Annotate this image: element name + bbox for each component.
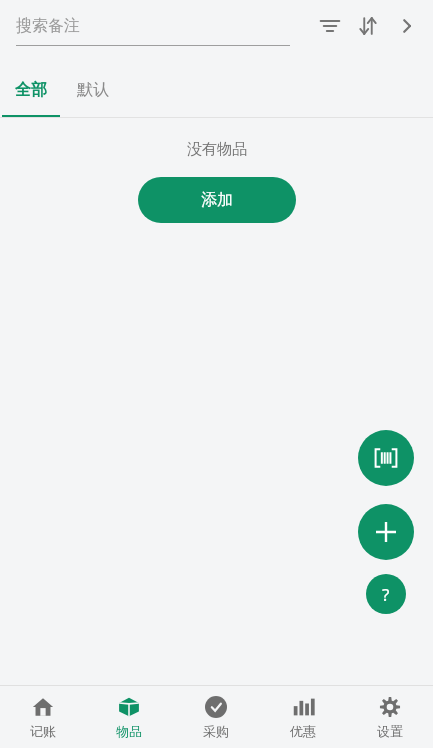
- staticText: 没有物品: [187, 140, 247, 159]
- button[interactable]: 全部: [0, 62, 62, 118]
- staticText: 默认: [77, 80, 109, 100]
- button[interactable]: Sort: [349, 7, 387, 45]
- button[interactable]: 采购: [172, 686, 259, 748]
- button[interactable]: Add: [358, 504, 414, 560]
- button[interactable]: 默认: [62, 62, 124, 118]
- button[interactable]: 添加: [138, 177, 296, 223]
- staticText: 记账: [30, 723, 56, 739]
- button[interactable]: More: [387, 7, 425, 45]
- staticText: 优惠: [290, 723, 316, 739]
- button[interactable]: 物品: [86, 686, 172, 748]
- button[interactable]: Scan barcode: [358, 430, 414, 486]
- staticText: 全部: [15, 80, 47, 100]
- staticText: 物品: [116, 723, 142, 739]
- button[interactable]: 设置: [346, 686, 433, 748]
- staticText: 采购: [203, 723, 229, 739]
- staticText: 添加: [201, 190, 233, 210]
- staticText: ?: [382, 583, 390, 606]
- button[interactable]: 优惠: [259, 686, 346, 748]
- button[interactable]: 记账: [0, 686, 86, 748]
- button[interactable]: Help: [366, 574, 406, 614]
- staticText: 搜索备注: [16, 16, 80, 36]
- button[interactable]: Filter: [311, 7, 349, 45]
- staticText: 设置: [377, 723, 403, 739]
